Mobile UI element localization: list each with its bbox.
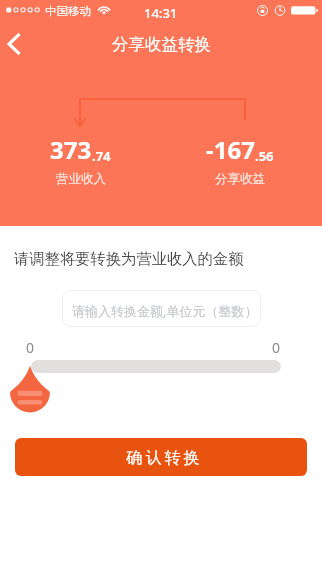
staticText: 确认转换 xyxy=(125,448,201,468)
button[interactable]: 确认转换 xyxy=(15,438,307,476)
staticText: 分享收益转换 xyxy=(112,34,211,55)
staticText: 14:31 xyxy=(144,4,178,22)
staticText: 0 xyxy=(26,338,35,357)
staticText: 请输入转换金额,单位元（整数） xyxy=(72,302,258,320)
staticText: 请调整将要转换为营业收入的金额 xyxy=(14,249,244,268)
staticText: .56 xyxy=(255,147,274,165)
staticText: 中国移动 xyxy=(45,4,91,18)
staticText: 0 xyxy=(272,338,281,357)
button[interactable]: 请输入转换金额,单位元（整数） xyxy=(62,290,261,327)
staticText: -167 xyxy=(206,133,255,166)
button[interactable]: Back xyxy=(0,22,40,66)
staticText: 373 xyxy=(50,133,92,166)
staticText: .74 xyxy=(92,147,111,165)
button[interactable]: Slider handle xyxy=(9,364,51,414)
staticText: 营业收入 xyxy=(56,171,106,187)
staticText: 分享收益 xyxy=(215,171,265,187)
